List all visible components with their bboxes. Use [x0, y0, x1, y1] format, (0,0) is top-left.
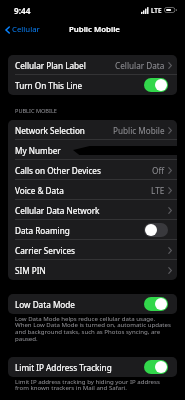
staticText: Network Selection [15, 125, 85, 136]
staticText: 9:44 [14, 5, 31, 16]
staticText: Cellular [12, 24, 40, 35]
staticText: Calls on Other Devices [15, 165, 101, 176]
button[interactable]: Toggle on [144, 360, 168, 374]
button[interactable]: Turn On This Line [8, 75, 177, 95]
staticText: Turn On This Line [15, 80, 83, 91]
button[interactable]: Cellular Data Network [8, 200, 177, 220]
staticText: Cellular Data [115, 60, 165, 71]
staticText: Cellular Plan Label [15, 60, 86, 71]
button[interactable]: Limit IP Address Tracking [8, 357, 177, 377]
button[interactable]: Voice & Data [8, 180, 177, 200]
staticText: Public Mobile [113, 125, 165, 136]
staticText: Limit IP address tracking by hiding your… [15, 377, 171, 392]
staticText: My Number [15, 145, 61, 156]
button[interactable]: Low Data Mode [8, 294, 177, 314]
staticText: Off [152, 165, 165, 176]
button[interactable]: SIM PIN [8, 260, 177, 280]
button[interactable]: Toggle on [144, 78, 168, 92]
button[interactable]: Network Selection [8, 120, 177, 140]
staticText: Public Mobile [69, 24, 120, 35]
button[interactable]: Data Roaming [8, 220, 177, 240]
staticText: Cellular Data Network [15, 205, 100, 216]
button[interactable]: Toggle off [144, 223, 168, 237]
button[interactable]: Cellular [5, 24, 40, 35]
button[interactable]: My Number [8, 140, 177, 160]
staticText: PUBLIC MOBILE [15, 107, 57, 115]
staticText: Carrier Services [15, 245, 76, 256]
staticText: Data Roaming [15, 225, 70, 236]
staticText: Low Data Mode helps reduce cellular data… [15, 314, 171, 343]
button[interactable]: Carrier Services [8, 240, 177, 260]
staticText: Low Data Mode [15, 299, 75, 310]
staticText: LTE [151, 6, 162, 15]
staticText: Limit IP Address Tracking [15, 362, 112, 373]
staticText: LTE [151, 185, 165, 196]
button[interactable]: Cellular Plan Label [8, 55, 177, 75]
staticText: SIM PIN [15, 265, 46, 276]
button[interactable]: Calls on Other Devices [8, 160, 177, 180]
button[interactable]: Toggle on [144, 297, 168, 311]
staticText: Voice & Data [15, 185, 64, 196]
